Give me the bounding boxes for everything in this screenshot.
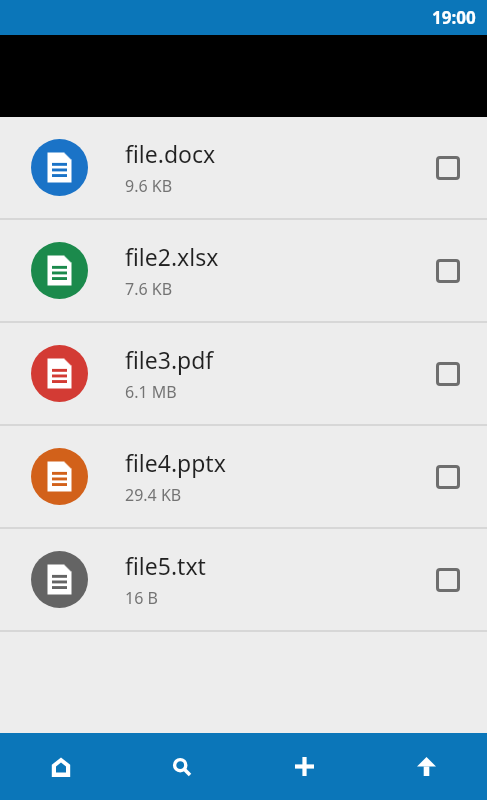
button[interactable]: file2.xlsx xyxy=(0,220,487,321)
button[interactable] xyxy=(436,259,460,283)
button[interactable]: file4.pptx xyxy=(0,426,487,527)
staticText: file3.pdf xyxy=(125,344,214,375)
button[interactable] xyxy=(436,568,460,592)
button[interactable]: file.docx xyxy=(0,117,487,218)
button[interactable] xyxy=(436,362,460,386)
staticText: 19:00 xyxy=(432,6,476,29)
button[interactable]: file5.txt xyxy=(0,529,487,630)
button[interactable] xyxy=(365,733,487,800)
button[interactable] xyxy=(243,733,365,800)
button[interactable] xyxy=(436,156,460,180)
staticText: 7.6 KB xyxy=(125,278,173,300)
staticText: file4.pptx xyxy=(125,447,226,478)
button[interactable] xyxy=(436,465,460,489)
staticText: 29.4 KB xyxy=(125,484,182,506)
button[interactable] xyxy=(0,733,121,800)
staticText: 16 B xyxy=(125,587,158,609)
staticText: 9.6 KB xyxy=(125,175,173,197)
staticText: file2.xlsx xyxy=(125,241,219,272)
staticText: file.docx xyxy=(125,138,216,169)
staticText: 6.1 MB xyxy=(125,381,177,403)
button[interactable] xyxy=(121,733,243,800)
staticText: file5.txt xyxy=(125,550,206,581)
button[interactable]: file3.pdf xyxy=(0,323,487,424)
